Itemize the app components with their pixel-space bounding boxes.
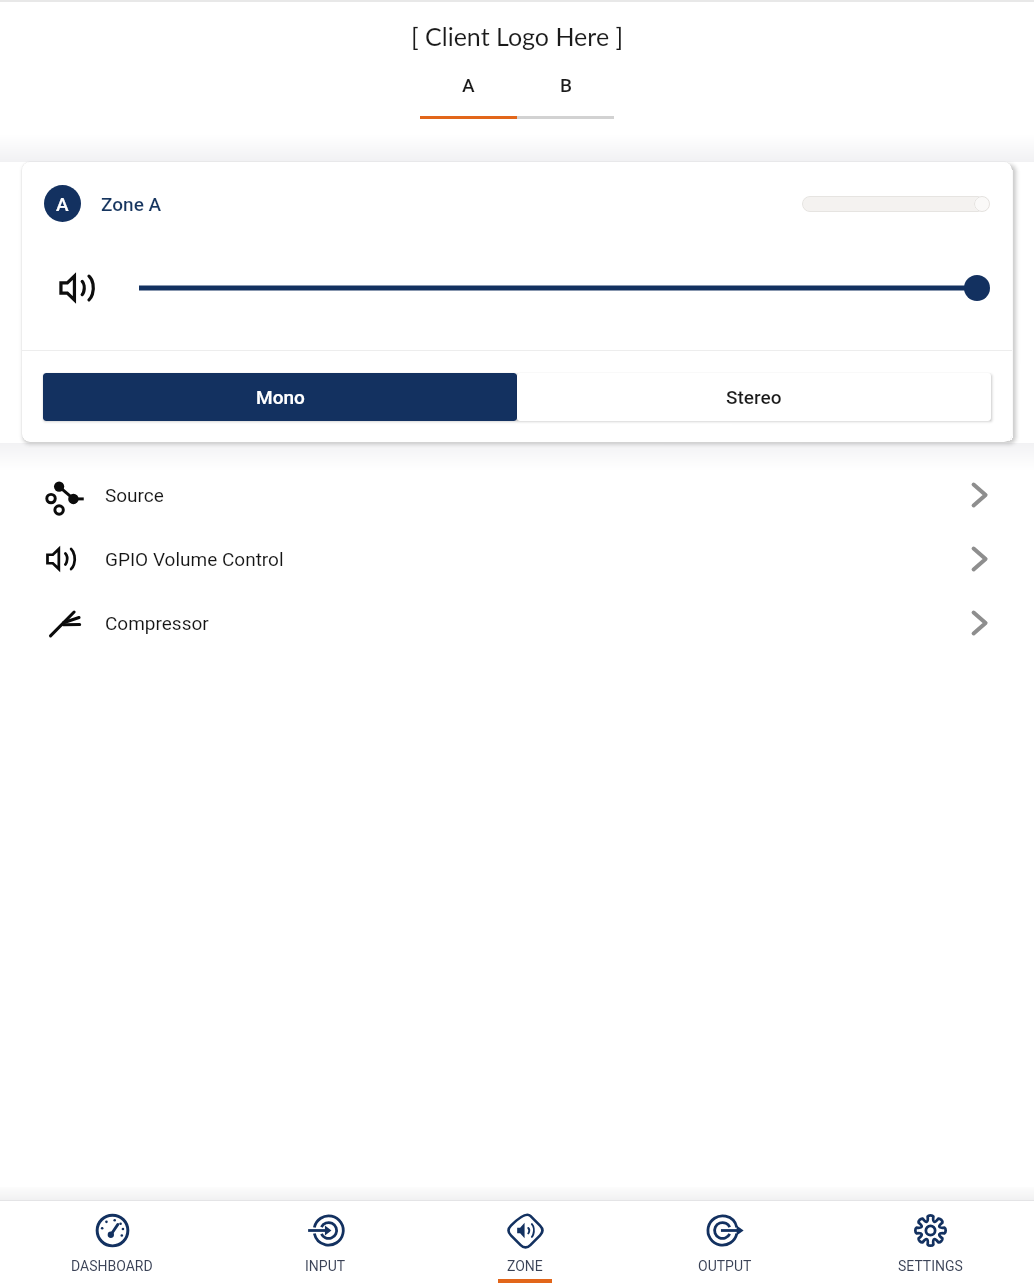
staticText: SETTINGS <box>898 1258 963 1274</box>
staticText: A <box>462 74 475 96</box>
staticText: [ Client Logo Here ] <box>411 21 624 51</box>
button[interactable]: GPIO Volume Control <box>0 527 1034 591</box>
staticText: A <box>56 193 69 215</box>
staticText: ZONE <box>507 1258 543 1274</box>
button[interactable]: Zone <box>425 1201 625 1283</box>
staticText: B <box>560 74 572 96</box>
other: Input <box>307 1212 344 1249</box>
staticText: OUTPUT <box>698 1258 752 1274</box>
staticText: INPUT <box>305 1258 346 1274</box>
button[interactable]: Source <box>0 463 1034 527</box>
staticText: DASHBOARD <box>71 1258 153 1274</box>
button[interactable]: A <box>420 74 517 119</box>
other: Zone <box>507 1212 544 1249</box>
button[interactable]: Output <box>625 1201 825 1283</box>
staticText: GPIO Volume Control <box>105 548 284 570</box>
staticText: Compressor <box>105 612 209 634</box>
button[interactable]: Compressor <box>0 591 1034 655</box>
other: Dashboard <box>94 1212 131 1249</box>
other: Settings <box>912 1212 949 1249</box>
button[interactable]: Dashboard <box>12 1201 212 1283</box>
staticText: Zone A <box>101 193 162 215</box>
button[interactable]: Zone level <box>802 195 990 212</box>
staticText: Source <box>105 484 164 506</box>
button[interactable]: Mono <box>43 373 517 421</box>
button[interactable]: Stereo <box>517 373 991 421</box>
button[interactable]: B <box>517 74 614 119</box>
other: Output <box>707 1212 744 1249</box>
button[interactable]: Settings <box>830 1201 1030 1283</box>
staticText: Mono <box>256 386 305 408</box>
button[interactable]: Input <box>225 1201 425 1283</box>
staticText: Stereo <box>726 386 782 408</box>
